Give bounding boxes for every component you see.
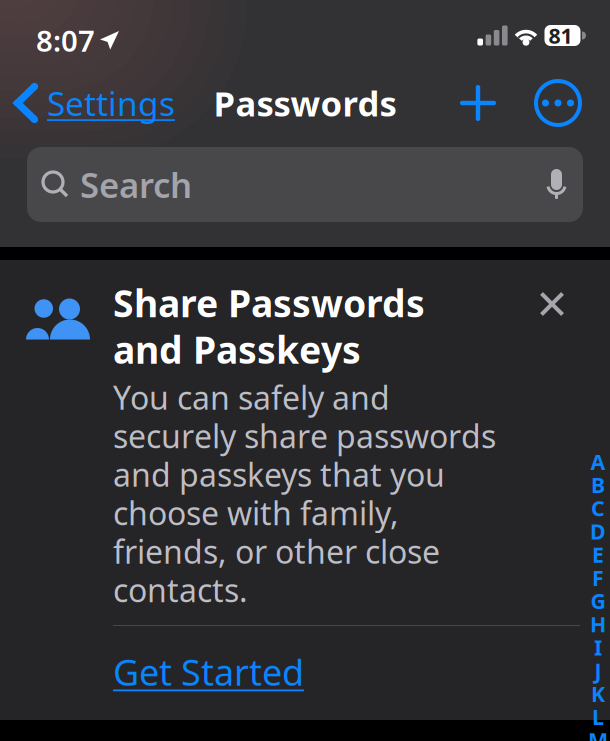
button[interactable]: Settings (0, 72, 181, 134)
staticText: G (590, 587, 605, 615)
staticText: B (591, 471, 605, 499)
staticText: Share Passwords and Passkeys (113, 278, 425, 374)
button[interactable]: Search (27, 147, 583, 222)
staticText: C (591, 494, 605, 522)
staticText: Passwords (213, 80, 396, 126)
staticText: A (590, 447, 605, 476)
staticText: Settings (47, 81, 175, 125)
button[interactable]: More options (530, 72, 586, 134)
staticText: D (590, 517, 606, 545)
staticText: 81 (548, 21, 572, 50)
button[interactable]: Get Started (113, 626, 324, 714)
staticText: F (592, 563, 604, 592)
staticText: H (590, 610, 606, 638)
button[interactable]: Dismiss (526, 278, 578, 330)
staticText: K (591, 679, 605, 708)
button[interactable]: Add password (448, 72, 508, 134)
staticText: J (594, 656, 601, 684)
staticText: E (592, 540, 604, 568)
staticText: M (588, 726, 608, 741)
staticText: L (592, 703, 604, 731)
staticText: I (594, 633, 602, 661)
staticText: 8:07 (36, 21, 95, 60)
staticText: Search (80, 161, 192, 207)
staticText: Get Started (113, 648, 304, 696)
staticText: You can safely and securely share passwo… (113, 376, 496, 611)
